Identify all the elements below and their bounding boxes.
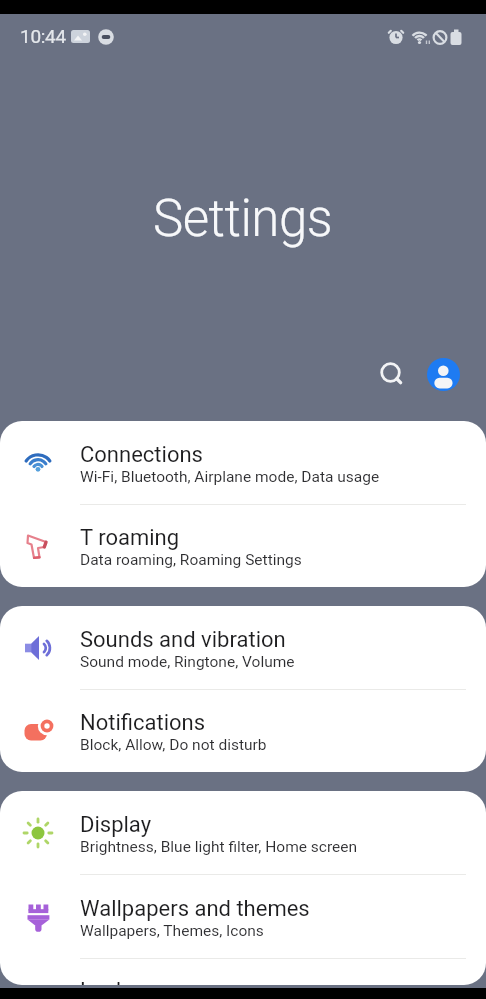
button[interactable]: Display bbox=[0, 791, 486, 874]
staticText: Lock screen bbox=[80, 978, 199, 985]
button[interactable]: Sounds and vibration bbox=[0, 606, 486, 689]
staticText: Sound mode, Ringtone, Volume bbox=[80, 653, 295, 671]
staticText: Wallpapers and themes bbox=[80, 896, 310, 922]
staticText: Settings bbox=[153, 189, 333, 249]
staticText: Display bbox=[80, 812, 152, 838]
staticText: Notifications bbox=[80, 710, 206, 736]
button[interactable]: Connections bbox=[0, 421, 486, 504]
staticText: Sounds and vibration bbox=[80, 627, 286, 653]
button[interactable]: T roaming bbox=[0, 505, 486, 587]
staticText: Wi-Fi, Bluetooth, Airplane mode, Data us… bbox=[80, 468, 380, 486]
staticText: Block, Allow, Do not disturb bbox=[80, 736, 267, 754]
button[interactable]: Lock screen bbox=[0, 959, 486, 985]
button[interactable] bbox=[427, 358, 460, 391]
button[interactable]: Notifications bbox=[0, 690, 486, 772]
button[interactable] bbox=[377, 359, 409, 391]
staticText: Connections bbox=[80, 442, 203, 468]
button[interactable]: Wallpapers and themes bbox=[0, 875, 486, 958]
staticText: Brightness, Blue light filter, Home scre… bbox=[80, 838, 358, 856]
staticText: 10:44 bbox=[20, 25, 66, 47]
staticText: Wallpapers, Themes, Icons bbox=[80, 922, 264, 940]
staticText: T roaming bbox=[80, 525, 180, 551]
staticText: Data roaming, Roaming Settings bbox=[80, 551, 302, 569]
